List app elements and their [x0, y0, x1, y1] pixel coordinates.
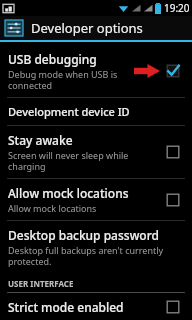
button[interactable]: USB debugging — [0, 45, 192, 97]
other: Unchecked — [166, 193, 180, 207]
button[interactable]: Strict mode enabled — [0, 293, 192, 320]
staticText: USB debugging — [8, 51, 97, 67]
staticText: Strict mode enabled — [8, 299, 124, 314]
button[interactable]: Developer options icon — [0, 16, 192, 40]
staticText: Stay awake — [8, 132, 73, 148]
staticText: Allow mock locations — [8, 185, 129, 201]
other: Checked — [166, 64, 180, 78]
other: Unchecked — [166, 300, 180, 314]
button[interactable]: Allow mock locations — [0, 179, 192, 220]
staticText: Screen will never sleep while charging — [8, 149, 129, 172]
staticText: Development device ID — [8, 104, 130, 119]
staticText: 19:20 — [164, 1, 190, 15]
staticText: Allow mock locations — [8, 202, 97, 214]
other: Pointer arrow — [134, 63, 160, 79]
staticText: Developer options — [31, 19, 143, 37]
staticText: Desktop full backups aren't currently pr… — [8, 244, 164, 267]
staticText: Debug mode when USB is connected — [8, 68, 118, 91]
other: Developer options icon — [5, 20, 23, 36]
button[interactable]: Stay awake — [0, 126, 192, 178]
other: Unchecked — [166, 145, 180, 159]
button[interactable]: Desktop backup password — [0, 221, 192, 273]
button[interactable]: Development device ID — [0, 98, 192, 125]
staticText: Desktop backup password — [8, 227, 159, 243]
staticText: USER INTERFACE — [8, 278, 74, 289]
